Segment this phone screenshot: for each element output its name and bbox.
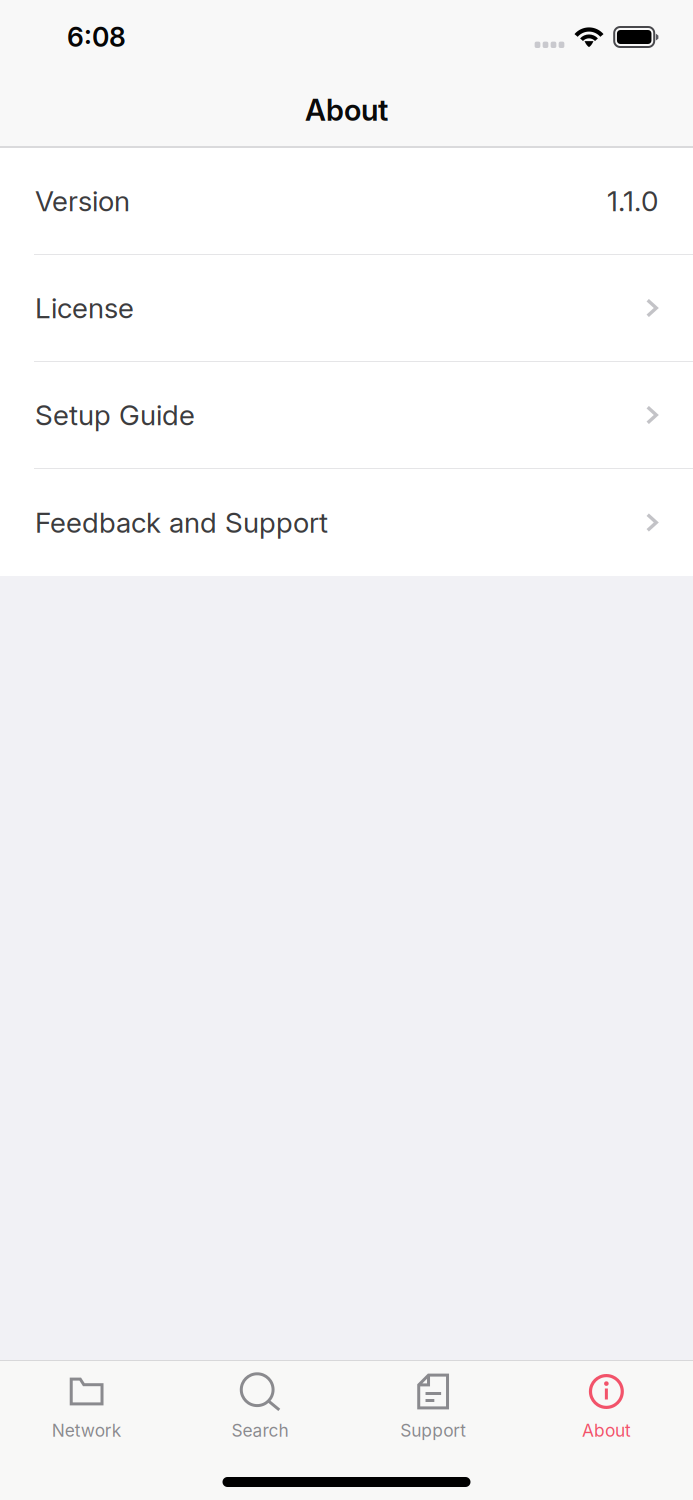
staticText: Support: [400, 1420, 466, 1441]
staticText: About: [582, 1420, 631, 1441]
staticText: 1.1.0: [607, 184, 658, 218]
button[interactable]: License: [0, 255, 693, 362]
staticText: Search: [231, 1420, 288, 1441]
button[interactable]: Support: [346, 1361, 520, 1456]
button[interactable]: Network: [0, 1361, 173, 1456]
button[interactable]: Setup Guide: [0, 362, 693, 469]
button[interactable]: Feedback and Support: [0, 469, 693, 576]
staticText: About: [305, 92, 388, 128]
button[interactable]: Version: [0, 148, 693, 255]
staticText: Version: [35, 184, 130, 218]
staticText: License: [35, 291, 134, 325]
staticText: Network: [52, 1420, 122, 1441]
button[interactable]: About: [520, 1361, 693, 1456]
staticText: 6:08: [67, 21, 126, 53]
staticText: Setup Guide: [35, 398, 195, 432]
button[interactable]: Search: [173, 1361, 346, 1456]
staticText: Feedback and Support: [35, 506, 328, 539]
